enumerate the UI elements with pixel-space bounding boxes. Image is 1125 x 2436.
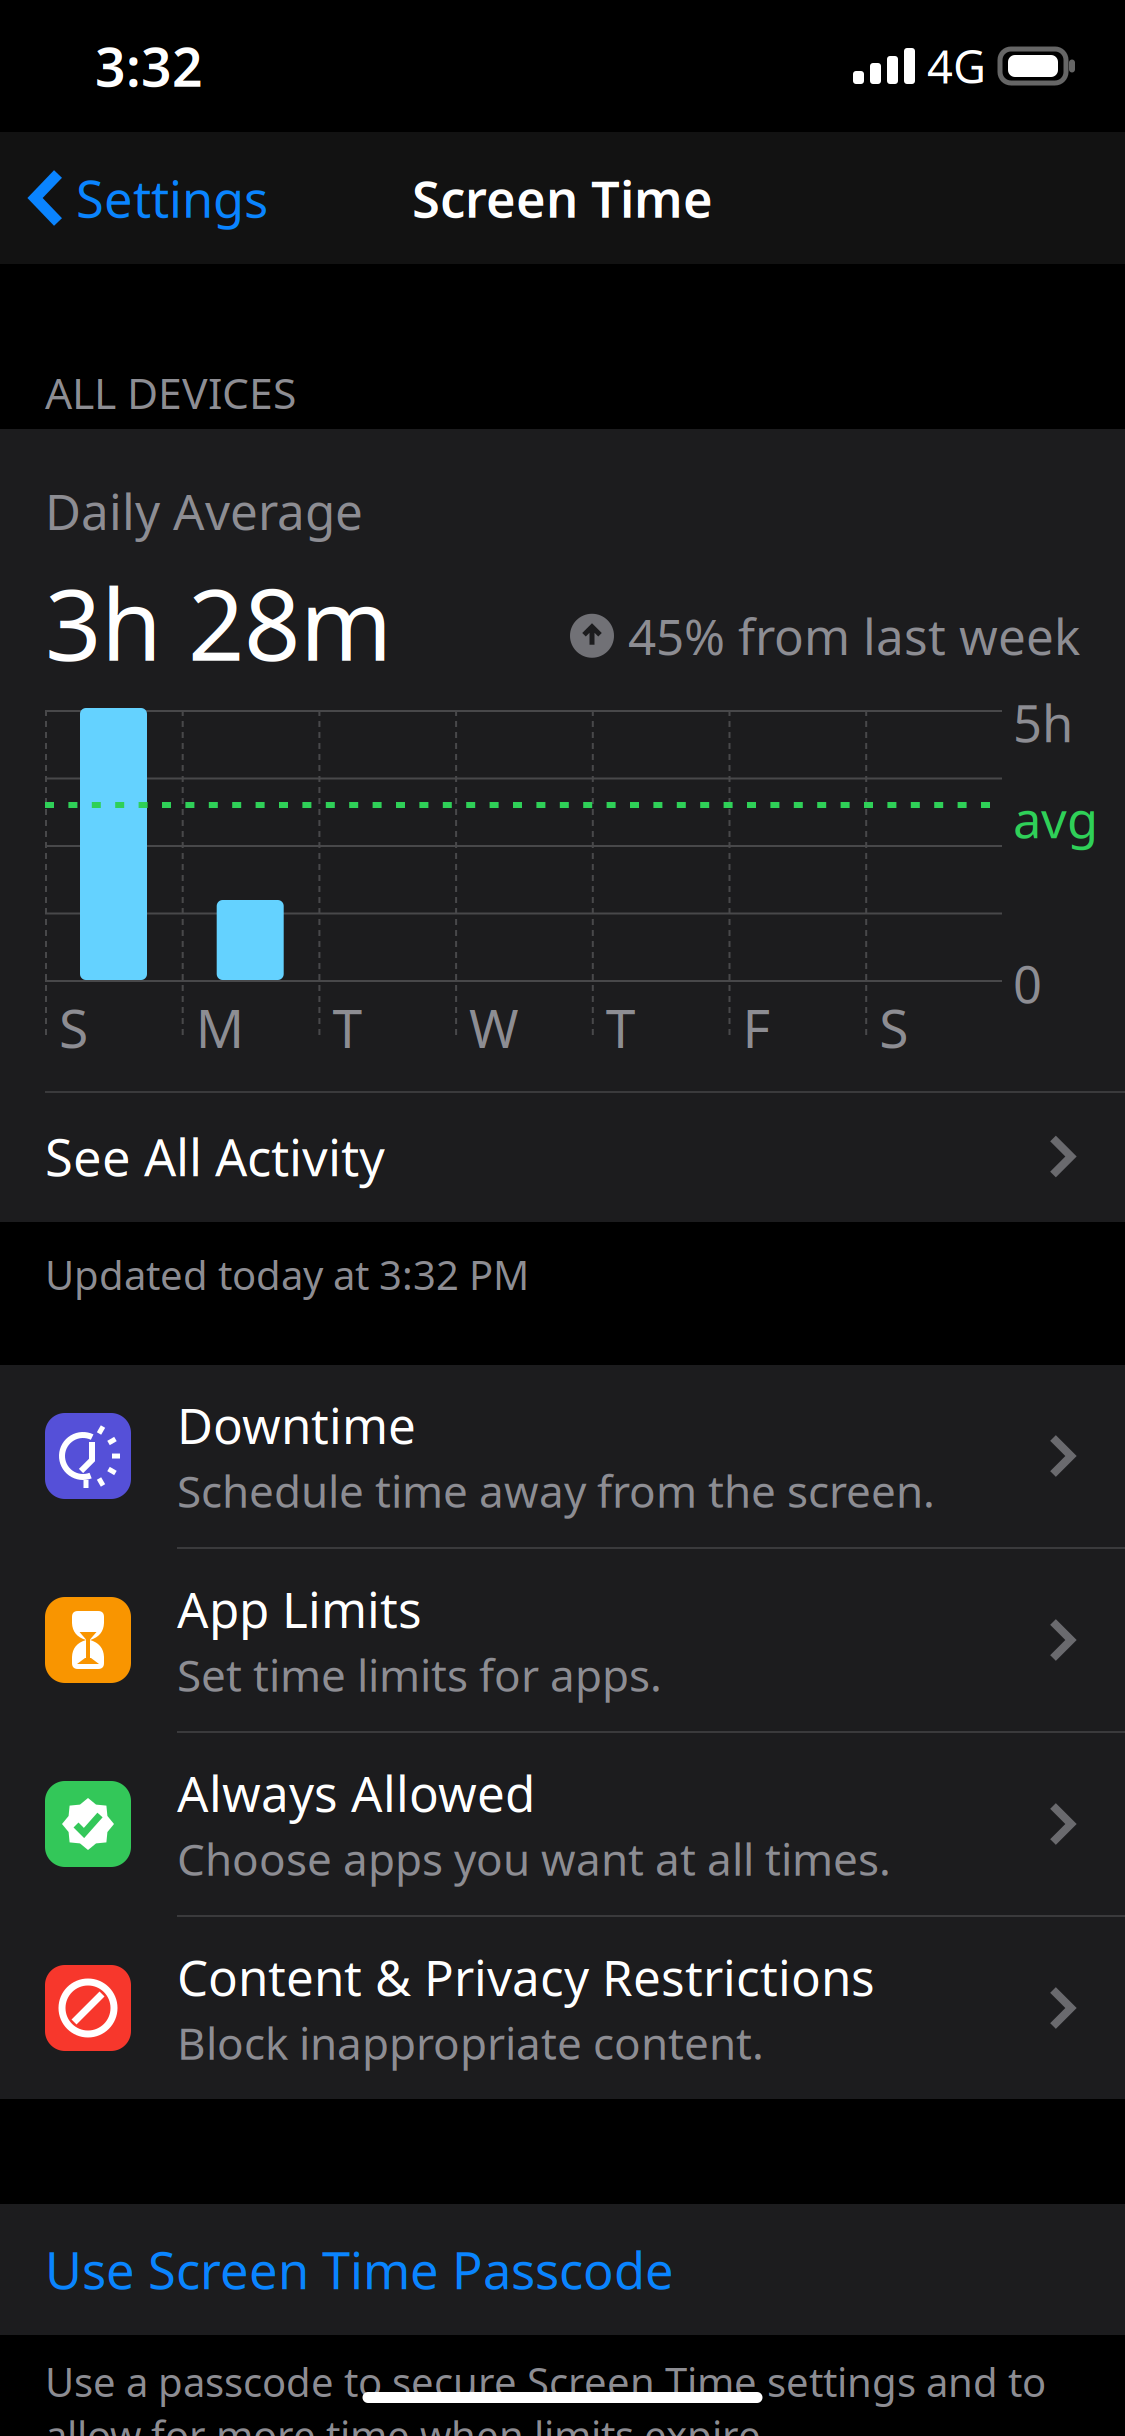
staticText: Block inappropriate content. [177,2013,764,2072]
staticText: 3h 28m [45,557,392,688]
button[interactable]: Always Allowed [0,1733,1125,1915]
button[interactable]: Use Screen Time Passcode [0,2204,1125,2335]
staticText: Always Allowed [177,1760,535,1825]
staticText: Updated today at 3:32 PM [45,1248,529,1301]
staticText: Daily Average [45,478,363,543]
staticText: W [469,992,519,1063]
staticText: 0 [1013,950,1042,1017]
staticText: App Limits [177,1576,422,1641]
staticText: See All Activity [45,1123,385,1190]
staticText: Screen Time [412,164,713,232]
button[interactable]: Content & Privacy Restrictions [0,1917,1125,2099]
staticText: 3:32 [95,31,203,101]
staticText: F [742,992,770,1063]
staticText: Downtime [177,1392,416,1457]
button[interactable]: App Limits [0,1549,1125,1731]
staticText: T [606,992,636,1063]
staticText: T [332,992,362,1063]
button[interactable]: Downtime [0,1365,1125,1547]
staticText: S [879,992,908,1063]
staticText: Use a passcode to secure Screen Time set… [45,2355,1046,2436]
staticText: Settings [76,164,268,232]
staticText: Schedule time away from the screen. [177,1461,935,1520]
staticText: Choose apps you want at all times. [177,1829,891,1888]
button[interactable]: See All Activity [0,1091,1125,1222]
staticText: S [59,992,88,1063]
staticText: Use Screen Time Passcode [45,2236,674,2303]
button[interactable]: Settings [0,148,282,248]
staticText: 5h [1013,689,1073,756]
staticText: 4G [927,36,986,96]
staticText: Set time limits for apps. [177,1645,662,1704]
staticText: avg [1013,785,1098,852]
staticText: ALL DEVICES [45,364,296,421]
staticText: Content & Privacy Restrictions [177,1944,875,2009]
staticText: M [196,992,244,1063]
staticText: 45% from last week [628,603,1080,668]
